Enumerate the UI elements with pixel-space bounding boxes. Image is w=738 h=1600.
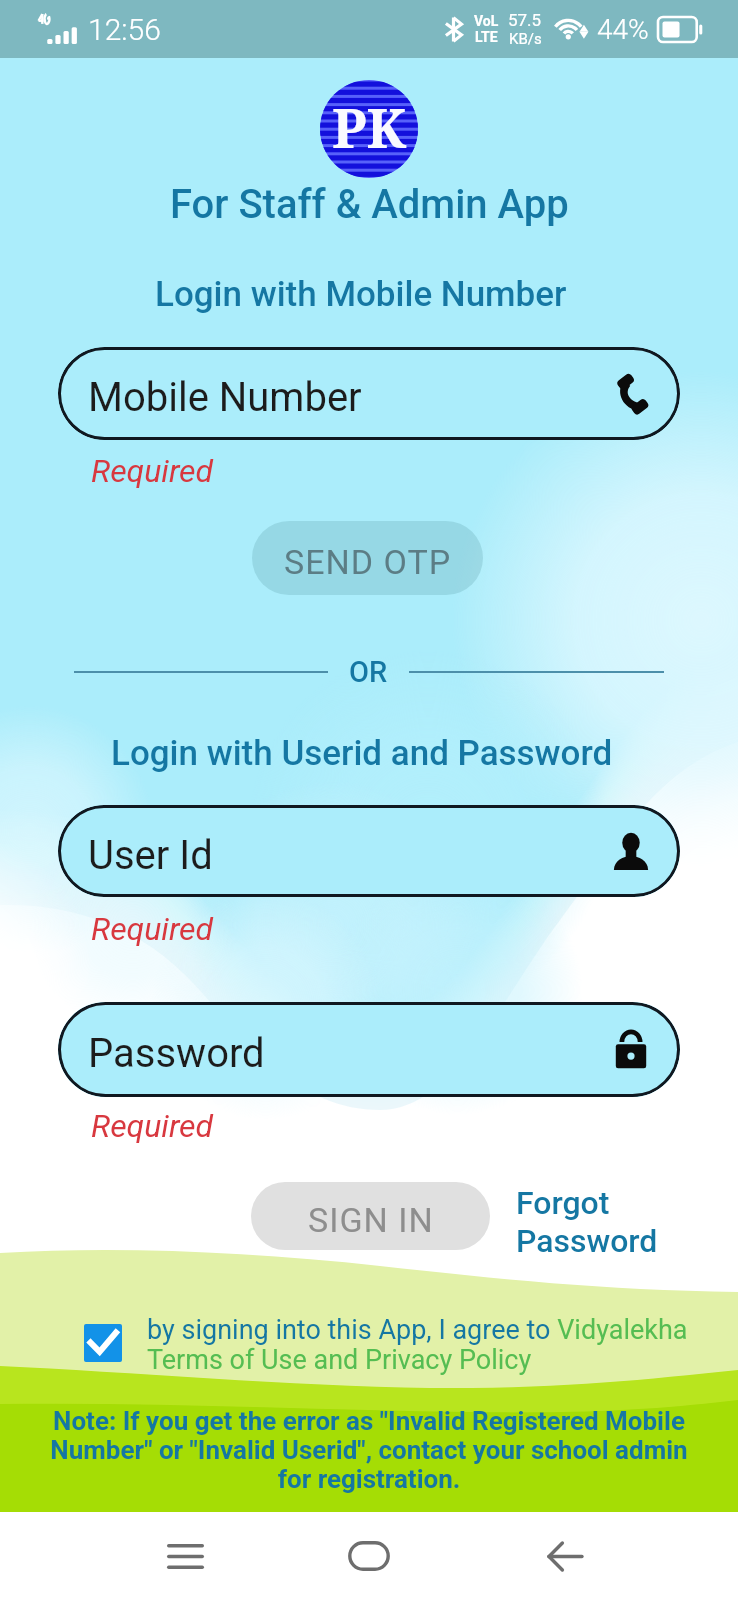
staticText: Password (88, 1030, 265, 1077)
staticText: LTE (475, 29, 498, 45)
staticText: KB/s (509, 30, 542, 48)
button[interactable]: Forgot (516, 1184, 658, 1260)
staticText: Required (91, 452, 214, 490)
staticText: Mobile Number (88, 374, 362, 421)
staticText: Note: If you get the error as "Invalid R… (45, 1406, 693, 1494)
staticText: User Id (88, 832, 213, 879)
staticText: Required (91, 910, 214, 948)
button[interactable]: Home (324, 1526, 414, 1586)
staticText: 57.5 (508, 10, 542, 30)
staticText: VoL (474, 13, 499, 29)
staticText: Login with Mobile Number (155, 274, 567, 315)
button[interactable]: Recent apps (140, 1526, 230, 1586)
staticText: SIGN IN (308, 1200, 434, 1240)
button[interactable]: Back (519, 1526, 609, 1586)
button[interactable]: by signing into this App, I agree to Vid… (147, 1314, 692, 1375)
button[interactable]: Mobile Number (58, 347, 680, 440)
button[interactable]: SEND OTP (252, 521, 483, 595)
staticText: Forgot (516, 1184, 610, 1222)
button[interactable]: I agree to the terms (84, 1324, 122, 1362)
staticText: OR (349, 655, 388, 689)
staticText: 12:56 (88, 12, 161, 47)
button[interactable]: User Id (58, 805, 680, 897)
staticText: Required (91, 1107, 214, 1145)
staticText: Password (516, 1222, 658, 1260)
button[interactable]: Password (58, 1002, 680, 1097)
staticText: SEND OTP (284, 542, 452, 582)
staticText: 44% (597, 13, 649, 46)
staticText: For Staff & Admin App (170, 181, 569, 228)
staticText: Login with Userid and Password (111, 733, 613, 774)
staticText: PK (332, 90, 407, 164)
button[interactable]: SIGN IN (251, 1182, 490, 1250)
